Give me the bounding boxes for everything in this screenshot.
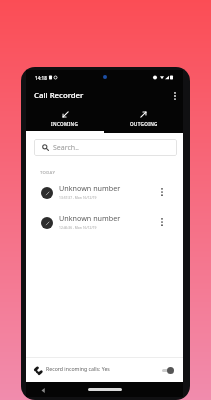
- button[interactable]: Item menu: [154, 183, 170, 199]
- staticText: Unknown number: [59, 183, 121, 193]
- staticText: 14:18: [35, 75, 47, 81]
- button[interactable]: INCOMING: [26, 107, 104, 131]
- button[interactable]: Unknown number: [26, 176, 183, 206]
- button[interactable]: Unknown number: [26, 206, 183, 236]
- staticText: 12:46:36 - Mon 16/12/19: [59, 225, 97, 229]
- staticText: TODAY: [40, 170, 56, 176]
- staticText: Record incoming calls: Yes: [46, 365, 110, 372]
- button[interactable]: Record incoming calls: Yes: [26, 358, 183, 379]
- button[interactable]: Back: [38, 385, 48, 395]
- staticText: 13:57:37 - Mon 16/12/19: [59, 195, 97, 199]
- staticText: OUTGOING: [130, 121, 158, 127]
- button[interactable]: OUTGOING: [104, 107, 183, 131]
- button[interactable]: Item menu: [154, 213, 170, 229]
- staticText: Unknown number: [59, 213, 121, 223]
- staticText: Search..: [53, 143, 79, 153]
- staticText: Call Recorder: [34, 90, 84, 101]
- button[interactable]: Search..: [34, 139, 177, 156]
- button[interactable]: More options: [168, 89, 182, 103]
- staticText: INCOMING: [51, 121, 79, 127]
